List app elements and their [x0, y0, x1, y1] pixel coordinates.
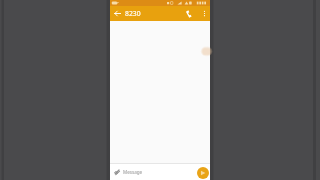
button[interactable]: Attach [111, 166, 122, 177]
button[interactable]: Send [197, 167, 209, 179]
button[interactable]: Call [182, 6, 195, 21]
button[interactable]: Back [112, 6, 123, 21]
staticText: 8230 [125, 9, 141, 18]
staticText: Message [123, 169, 143, 175]
button[interactable]: More options [198, 6, 210, 21]
